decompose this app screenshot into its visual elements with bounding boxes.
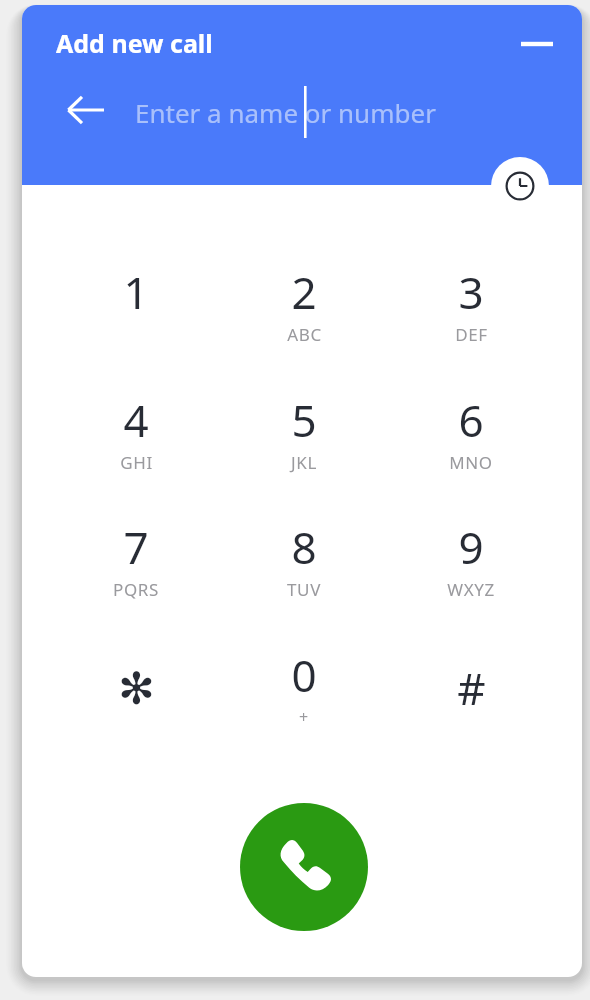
staticText: GHI [120,451,153,474]
button[interactable]: 5 [229,390,379,494]
staticText: MNO [449,451,493,474]
staticText: DEF [455,323,488,346]
staticText: Enter a name or number [135,95,436,130]
staticText: 7 [123,517,149,577]
staticText: TUV [287,578,321,601]
button[interactable]: # [396,645,546,749]
staticText: JKL [291,451,317,474]
staticText: PQRS [113,578,159,601]
staticText: # [457,658,486,718]
staticText: Add new call [56,26,213,60]
staticText: 0 [291,645,317,705]
staticText: WXYZ [447,578,495,601]
staticText: 8 [291,517,317,577]
button[interactable]: Minimize [506,13,568,75]
button[interactable]: Call history [491,157,549,215]
button[interactable]: Enter a name or number [127,83,547,141]
button[interactable]: 7 [61,517,211,621]
staticText: 6 [458,390,484,450]
staticText: 4 [123,390,149,450]
button[interactable]: 4 [61,390,211,494]
button[interactable]: Call [240,803,368,931]
staticText: 3 [458,262,484,322]
button[interactable]: 6 [396,390,546,494]
staticText: 1 [123,262,149,322]
button[interactable]: 2 [229,262,379,366]
button[interactable]: 9 [396,517,546,621]
button[interactable]: Back [54,78,118,142]
staticText: 5 [291,390,317,450]
button[interactable]: ✻ [61,645,211,749]
staticText: 2 [291,262,317,322]
button[interactable]: 0 [229,645,379,749]
staticText: ABC [287,323,322,346]
staticText: ✻ [118,663,155,714]
button[interactable]: 8 [229,517,379,621]
staticText: + [299,706,309,728]
button[interactable]: 3 [396,262,546,366]
staticText: 9 [458,517,484,577]
button[interactable]: 1 [61,262,211,366]
